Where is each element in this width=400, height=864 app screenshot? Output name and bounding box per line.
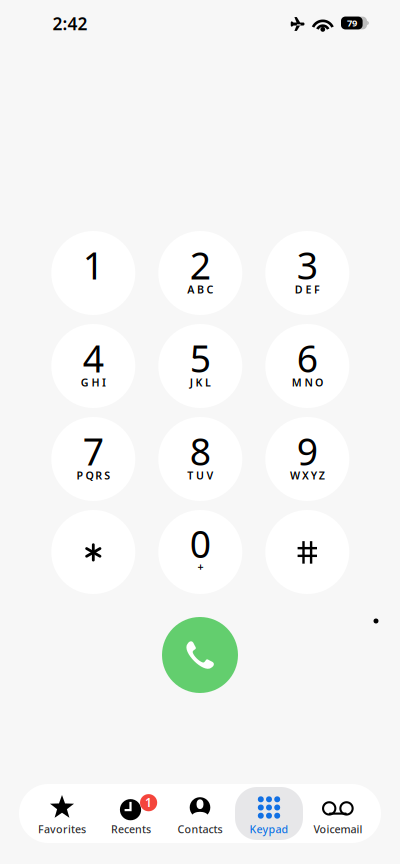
button[interactable]: 6 [265, 324, 349, 408]
staticText: 1 [83, 240, 104, 290]
staticText: Recents [111, 822, 151, 836]
button[interactable]: 0 [158, 510, 242, 594]
button[interactable]: 1 [51, 231, 135, 315]
staticText: + [197, 559, 206, 574]
staticText: Contacts [177, 822, 222, 836]
button[interactable]: Keypad [234, 784, 303, 843]
staticText: 2:42 [52, 12, 87, 35]
staticText: WXYZ [290, 468, 330, 482]
button[interactable]: 4 [51, 324, 135, 408]
button[interactable]: Pound [265, 510, 349, 594]
staticText: TUV [187, 468, 219, 482]
staticText: GHI [81, 375, 112, 389]
button[interactable]: 5 [158, 324, 242, 408]
staticText: 5 [190, 333, 211, 383]
button[interactable]: 3 [265, 231, 349, 315]
staticText: DEF [295, 282, 326, 296]
staticText: 3 [297, 240, 318, 290]
button[interactable]: 7 [51, 417, 135, 501]
staticText: PQRS [76, 468, 115, 482]
staticText: MNO [292, 375, 329, 389]
button[interactable]: 8 [158, 417, 242, 501]
button[interactable]: Voicemail [303, 784, 372, 843]
button[interactable]: Star [51, 510, 135, 594]
staticText: 9 [297, 426, 318, 476]
staticText: Favorites [38, 822, 86, 836]
staticText: Keypad [249, 822, 288, 836]
staticText: ABC [187, 282, 219, 296]
button[interactable]: 2 [158, 231, 242, 315]
staticText: 4 [83, 333, 104, 383]
button[interactable]: 1 [96, 784, 165, 843]
staticText: 1 [145, 794, 152, 810]
staticText: 0 [190, 519, 211, 568]
staticText: 6 [297, 333, 318, 383]
button[interactable]: Contacts [165, 784, 234, 843]
button[interactable]: Call [162, 617, 238, 693]
staticText: 7 [83, 426, 104, 476]
staticText: 2 [190, 240, 211, 290]
staticText: Voicemail [313, 822, 362, 836]
button[interactable]: 9 [265, 417, 349, 501]
staticText: 8 [190, 426, 211, 476]
staticText: JKL [190, 375, 217, 389]
staticText: 79 [347, 17, 357, 29]
button[interactable]: Favorites [27, 784, 96, 843]
